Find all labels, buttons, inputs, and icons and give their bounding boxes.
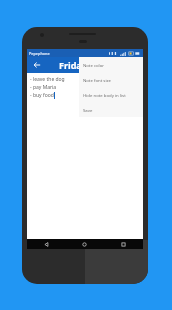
button[interactable]: Hide note body in list bbox=[79, 87, 143, 102]
button[interactable]: Save bbox=[79, 102, 143, 117]
button[interactable]: Back bbox=[27, 239, 65, 249]
staticText: - leave the dog bbox=[30, 76, 65, 83]
staticText: - pay Maria bbox=[30, 84, 57, 91]
button[interactable]: Home bbox=[65, 239, 104, 249]
button[interactable]: Navigate up bbox=[29, 57, 45, 73]
staticText: Friday bbox=[59, 59, 87, 71]
staticText: Pepephone bbox=[29, 51, 50, 56]
button[interactable]: Note font size bbox=[79, 72, 143, 87]
staticText: - buy food bbox=[30, 92, 54, 99]
staticText: Note color bbox=[83, 62, 105, 68]
button[interactable]: Recent apps bbox=[104, 239, 143, 249]
button[interactable]: Note color bbox=[79, 57, 143, 72]
staticText: Hide note body in list bbox=[83, 92, 126, 98]
staticText: Save bbox=[83, 107, 93, 113]
staticText: Note font size bbox=[83, 77, 111, 83]
